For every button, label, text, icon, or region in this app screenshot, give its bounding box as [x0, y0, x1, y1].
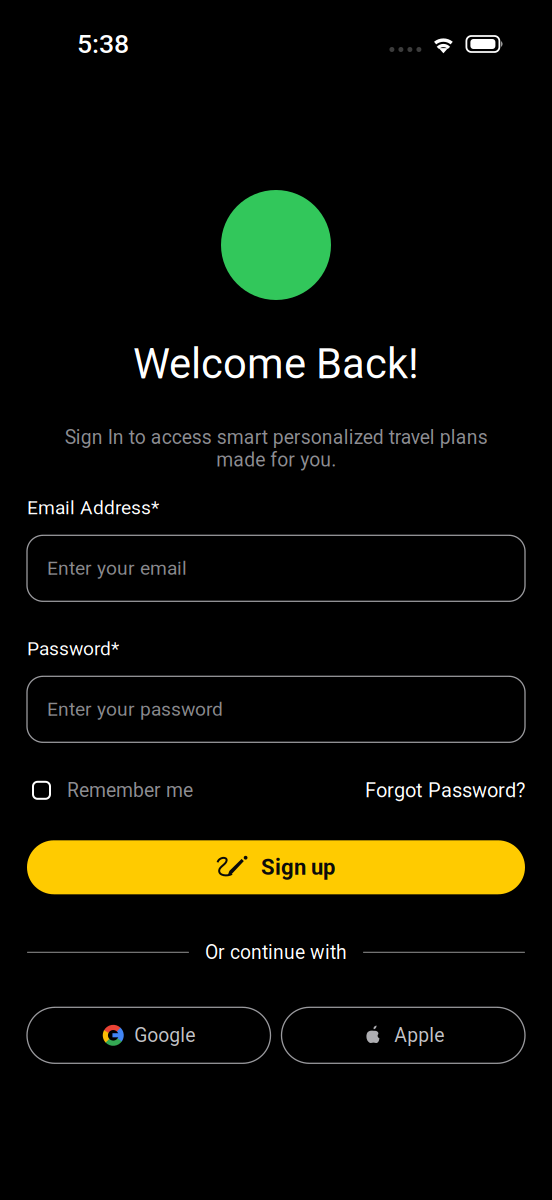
staticText: Forgot Password? [365, 779, 525, 802]
button[interactable]: Enter your password [27, 676, 525, 742]
staticText: Google [134, 1024, 195, 1047]
button[interactable]: Google [27, 1007, 270, 1063]
staticText: Password* [27, 638, 119, 660]
button[interactable]: Remember me [27, 770, 193, 810]
staticText: Apple [394, 1024, 444, 1047]
staticText: 5:38 [77, 28, 129, 60]
staticText: Or continue with [205, 941, 347, 964]
staticText: Welcome Back! [133, 339, 419, 388]
button[interactable]: Sign up [27, 840, 525, 894]
staticText: Sign In to access smart personalized tra… [64, 426, 487, 471]
staticText: Sign up [261, 854, 335, 880]
button[interactable]: Apple [281, 1007, 525, 1063]
staticText: Remember me [67, 779, 193, 802]
staticText: Email Address* [27, 497, 159, 519]
button[interactable]: Forgot Password? [365, 770, 525, 810]
staticText: Enter your password [47, 698, 223, 721]
staticText: Enter your email [47, 557, 187, 580]
button[interactable]: Enter your email [27, 535, 525, 601]
